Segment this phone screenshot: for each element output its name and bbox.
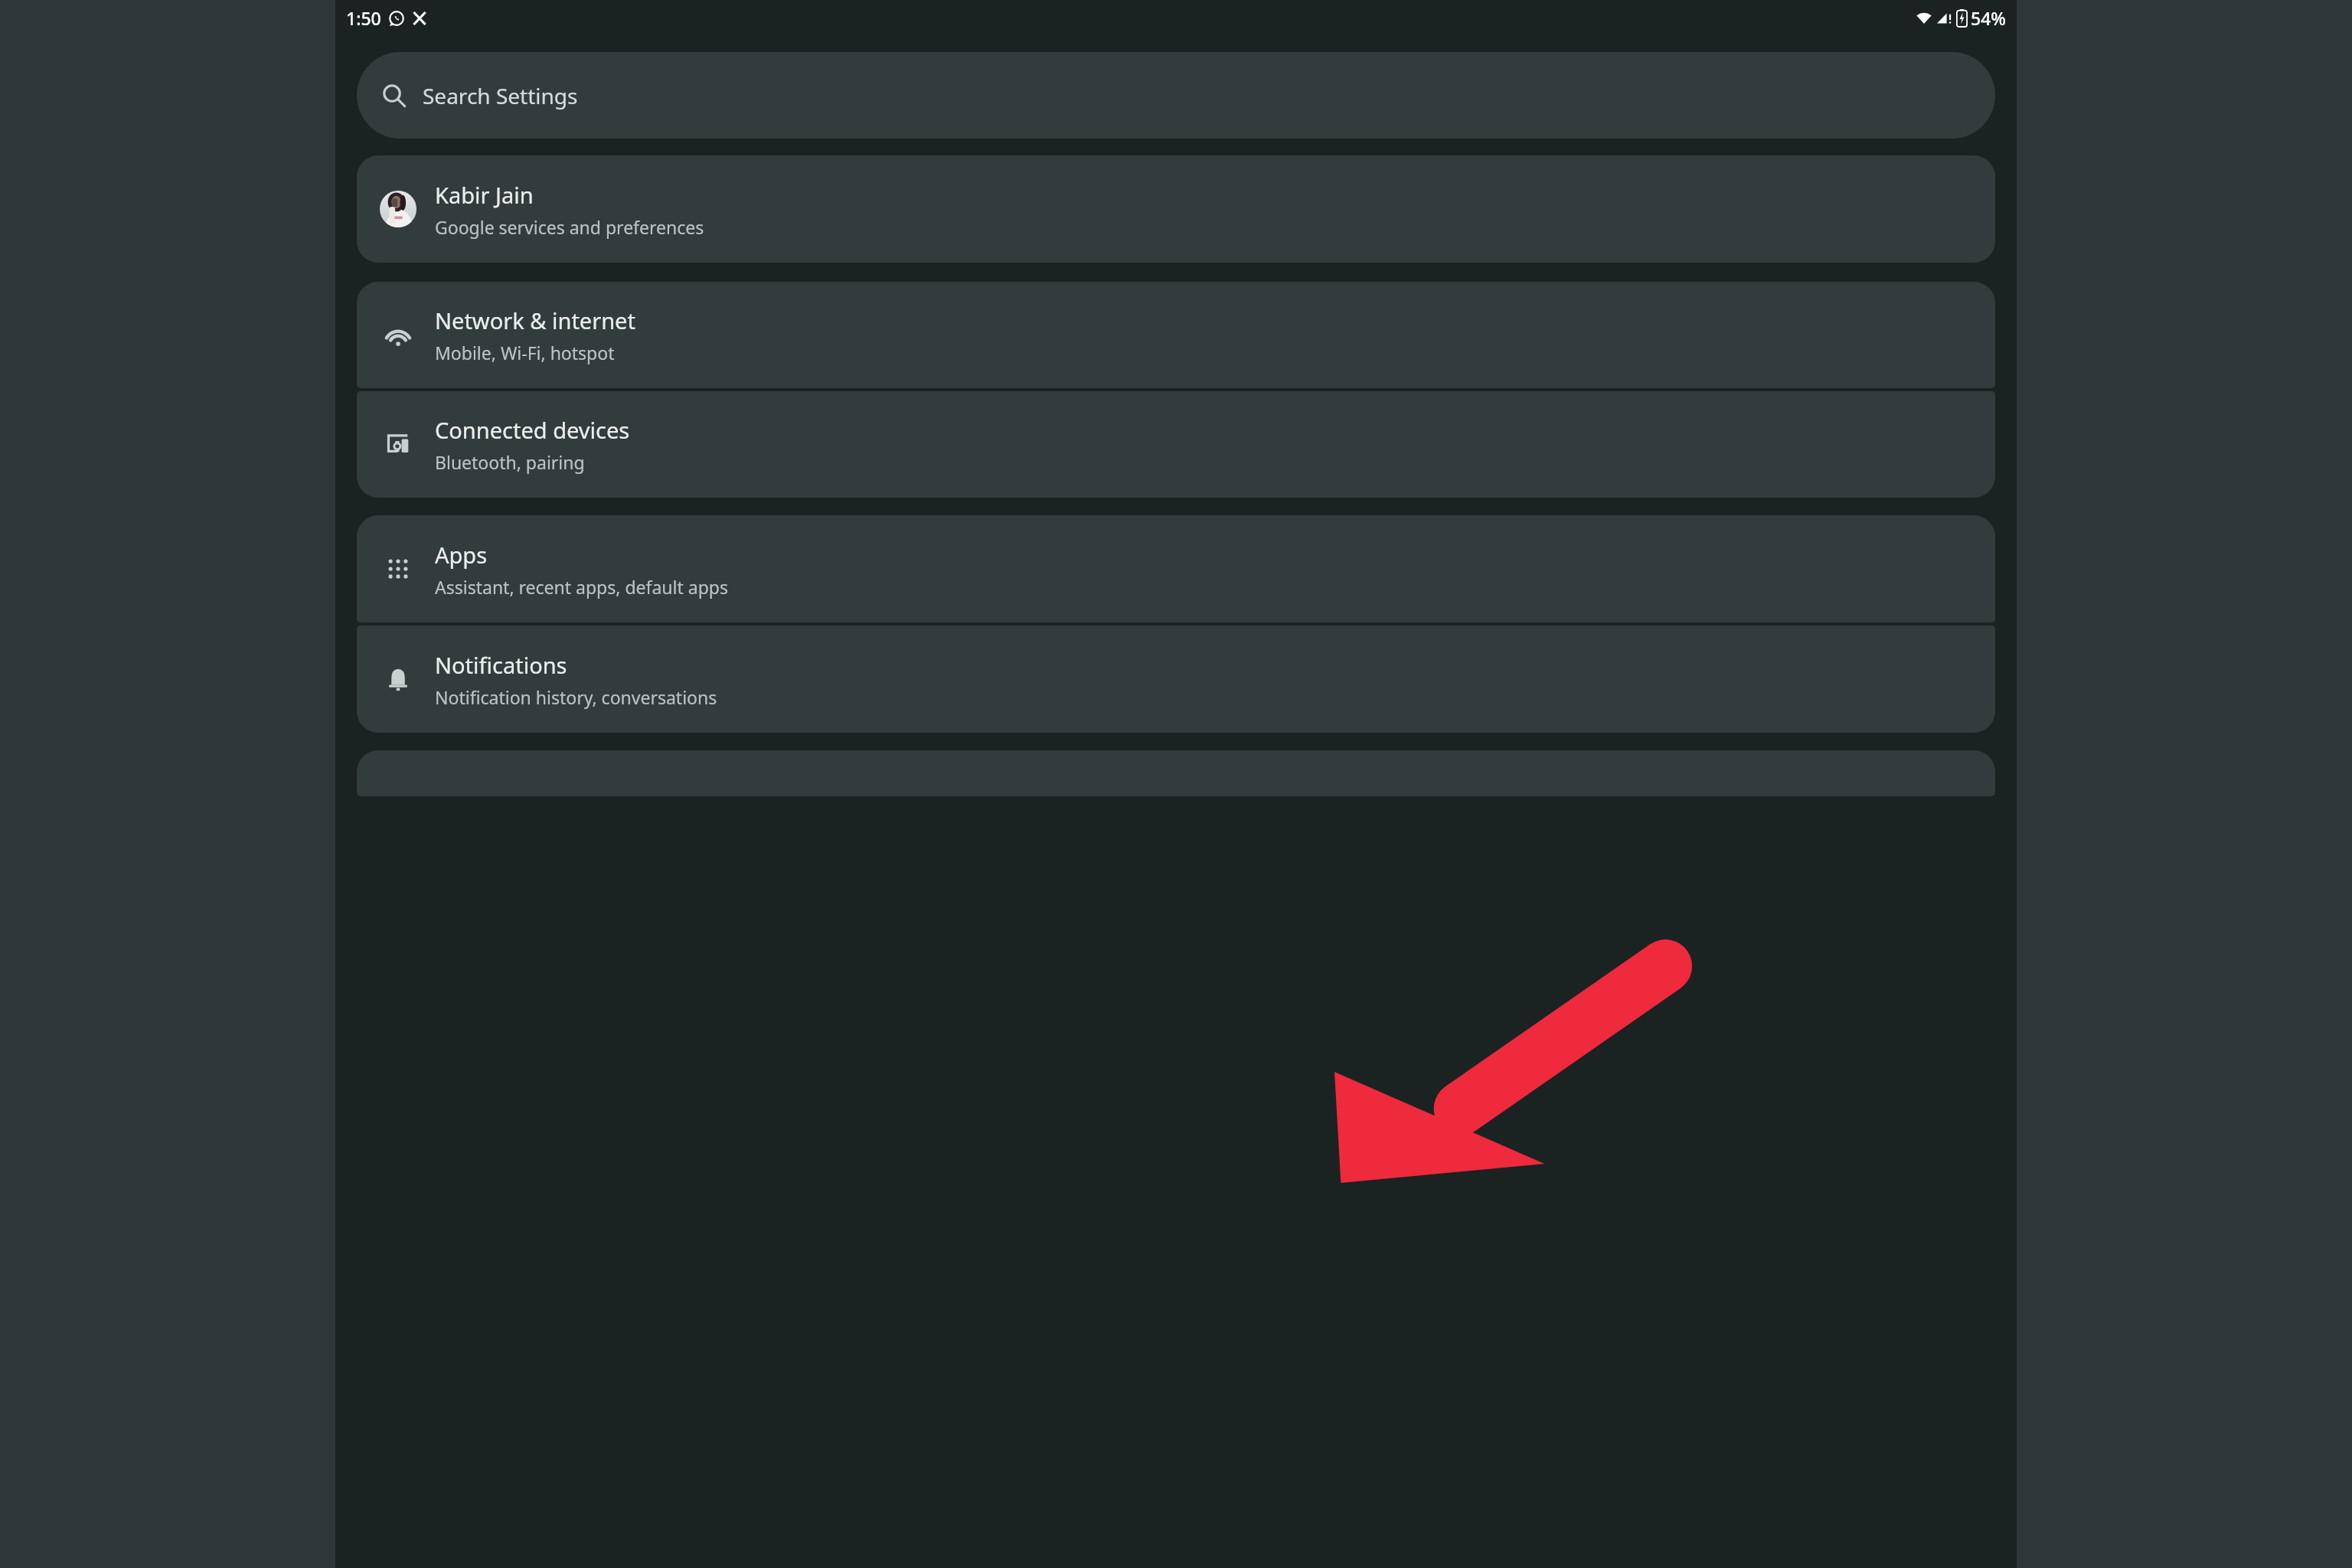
staticText: Notifications bbox=[435, 650, 567, 680]
button[interactable]: Apps bbox=[357, 515, 1995, 622]
other: Network and internet bbox=[384, 321, 413, 350]
button[interactable]: Notifications bbox=[357, 626, 1995, 733]
staticText: Apps bbox=[435, 540, 488, 570]
staticText: Mobile, Wi-Fi, hotspot bbox=[435, 341, 615, 364]
other: Apps bbox=[384, 554, 413, 583]
staticText: 1:50 bbox=[346, 6, 381, 30]
other: Notifications bbox=[384, 665, 413, 694]
staticText: Kabir Jain bbox=[435, 180, 534, 210]
staticText: Notification history, conversations bbox=[435, 685, 717, 709]
button[interactable] bbox=[357, 750, 1995, 796]
staticText: Google services and preferences bbox=[435, 215, 704, 239]
button[interactable]: Search Settings bbox=[357, 52, 1995, 139]
staticText: Assistant, recent apps, default apps bbox=[435, 575, 728, 599]
staticText: 54% bbox=[1971, 6, 2006, 30]
button[interactable]: Network and internet bbox=[357, 282, 1995, 388]
staticText: Search Settings bbox=[423, 81, 578, 110]
staticText: Network & internet bbox=[435, 305, 635, 335]
button[interactable]: Kabir Jain bbox=[357, 155, 1995, 263]
staticText: Connected devices bbox=[435, 415, 630, 445]
staticText: Bluetooth, pairing bbox=[435, 450, 585, 474]
button[interactable]: Connected devices bbox=[357, 391, 1995, 498]
other: Connected devices bbox=[384, 430, 413, 459]
